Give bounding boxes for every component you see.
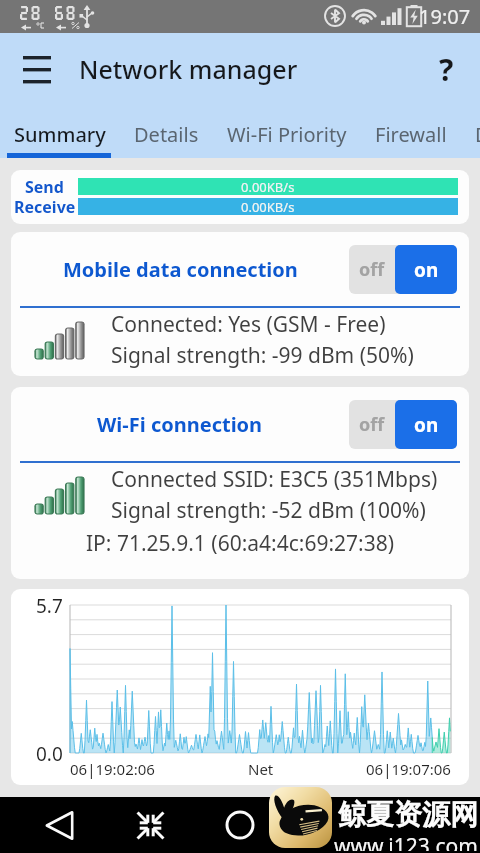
button[interactable]: Firewall: [361, 105, 461, 158]
staticText: ?: [439, 49, 454, 90]
staticText: Wi-Fi Priority: [227, 121, 347, 148]
staticText: on: [414, 257, 439, 283]
staticText: Net: [248, 759, 274, 779]
staticText: Connected SSID: E3C5 (351Mbps): [111, 465, 438, 494]
staticText: Receive: [14, 196, 76, 216]
staticText: off: [359, 257, 385, 282]
staticText: Network manager: [79, 52, 298, 86]
staticText: Connected: Yes (GSM - Free): [111, 310, 386, 339]
button[interactable]: Collapse: [123, 798, 177, 852]
button[interactable]: Home: [213, 798, 267, 852]
staticText: 19:07: [419, 3, 471, 30]
button[interactable]: Help: [424, 47, 468, 91]
staticText: Mobile data connection: [63, 256, 298, 283]
staticText: off: [359, 412, 385, 437]
staticText: www.j123.com: [334, 832, 478, 851]
staticText: 0.0: [36, 741, 63, 767]
button[interactable]: off: [349, 400, 457, 449]
staticText: IP: 71.25.9.1 (60:a4:4c:69:27:38): [86, 529, 395, 558]
button[interactable]: Menu: [14, 46, 60, 92]
staticText: 06|19:07:06: [366, 759, 451, 779]
staticText: on: [414, 412, 439, 438]
button[interactable]: Back: [32, 798, 86, 852]
staticText: Data usage: [475, 121, 480, 148]
button[interactable]: Wi-Fi Priority: [213, 105, 361, 158]
staticText: 0.00KB/s: [241, 178, 295, 195]
staticText: Send: [25, 176, 64, 196]
staticText: 06|19:02:06: [70, 759, 155, 779]
staticText: 5.7: [36, 593, 63, 619]
staticText: Details: [134, 121, 199, 148]
button[interactable]: Data usage: [461, 105, 480, 158]
staticText: Signal strength: -99 dBm (50%): [111, 341, 414, 370]
staticText: Wi-Fi connection: [97, 411, 263, 438]
button[interactable]: Summary: [0, 105, 120, 158]
button[interactable]: off: [349, 245, 457, 294]
staticText: 鲸夏资源网: [338, 797, 478, 832]
staticText: Signal strength: -52 dBm (100%): [111, 496, 426, 525]
staticText: Summary: [14, 121, 106, 148]
staticText: Firewall: [375, 121, 447, 148]
staticText: 0.00KB/s: [241, 198, 295, 215]
button[interactable]: Details: [120, 105, 213, 158]
